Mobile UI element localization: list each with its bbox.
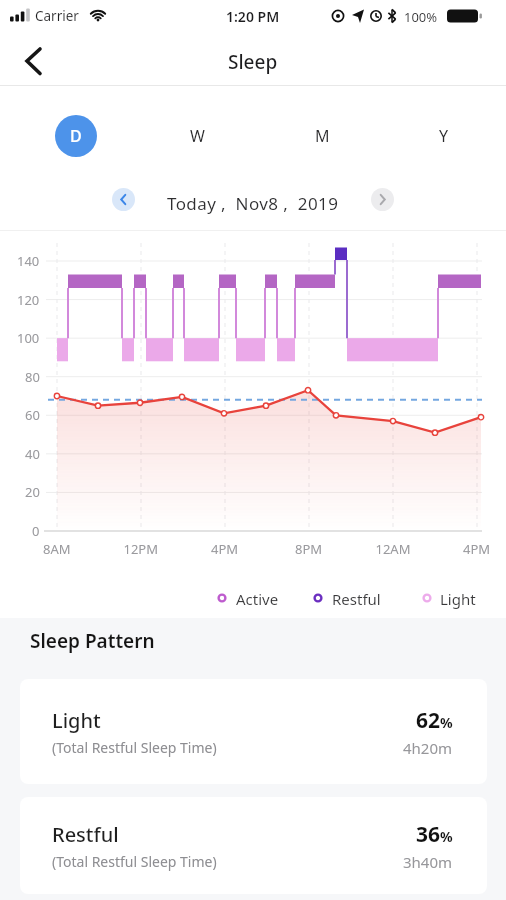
button[interactable]: Light bbox=[20, 679, 487, 784]
staticText: Light bbox=[52, 707, 101, 734]
staticText: 4h20m bbox=[403, 738, 453, 758]
staticText: Carrier bbox=[35, 7, 79, 25]
staticText: Active bbox=[236, 589, 279, 609]
staticText: M bbox=[315, 125, 330, 147]
button[interactable]: M bbox=[301, 115, 343, 157]
staticText: (Total Restful Sleep Time) bbox=[52, 738, 217, 757]
staticText: 62% bbox=[416, 706, 453, 735]
button[interactable]: Restful bbox=[20, 797, 487, 894]
staticText: Restful bbox=[52, 821, 119, 848]
staticText: Light bbox=[440, 589, 476, 609]
staticText: 3h40m bbox=[403, 852, 453, 872]
staticText: Restful bbox=[332, 589, 381, 609]
staticText: Sleep Pattern bbox=[30, 628, 155, 654]
staticText: Today , Nov8 , 2019 bbox=[167, 192, 339, 215]
staticText: W bbox=[190, 125, 205, 147]
button[interactable]: W bbox=[176, 115, 218, 157]
staticText: (Total Restful Sleep Time) bbox=[52, 852, 217, 871]
button[interactable]: D bbox=[55, 115, 97, 157]
button[interactable] bbox=[16, 42, 56, 82]
staticText: 36% bbox=[416, 820, 453, 849]
staticText: D bbox=[70, 125, 82, 147]
staticText: 100% bbox=[404, 8, 438, 26]
staticText: Sleep bbox=[228, 49, 278, 75]
staticText: Y bbox=[439, 125, 449, 147]
button[interactable] bbox=[112, 188, 135, 211]
button[interactable] bbox=[371, 188, 394, 211]
staticText: 1:20 PM bbox=[226, 7, 280, 26]
button[interactable]: Y bbox=[423, 115, 465, 157]
